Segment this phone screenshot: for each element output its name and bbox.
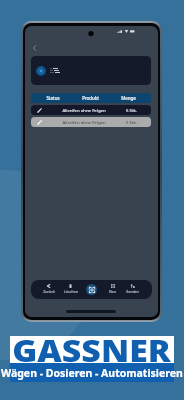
staticText: Menge [121, 95, 136, 101]
staticText: Zurück [43, 289, 55, 294]
staticText: 5 Stk. [126, 119, 137, 125]
staticText: GASSNER [12, 330, 172, 370]
button[interactable]: Altreifen ohne Felgen [31, 105, 151, 115]
staticText: Altreifen ohne Felgen [62, 107, 106, 113]
staticText: Produkt [82, 95, 99, 101]
button[interactable] [31, 56, 151, 85]
staticText: Status [46, 95, 60, 101]
button[interactable]: Delete [60, 284, 81, 294]
staticText: Altreifen ohne Felgen [62, 119, 106, 125]
staticText: Neu [109, 289, 116, 294]
staticText: Senden [126, 289, 139, 294]
staticText: 5 Stk. [126, 107, 137, 113]
staticText: Wägen - Dosieren - Automatisieren [1, 366, 183, 380]
staticText: Löschen [64, 289, 78, 294]
button[interactable]: Altreifen ohne Felgen [31, 117, 151, 127]
button[interactable]: Back [28, 42, 40, 54]
button[interactable]: Send [122, 284, 143, 294]
button[interactable]: Scan [86, 284, 97, 295]
button[interactable]: New [102, 284, 123, 294]
button[interactable]: Back [38, 284, 59, 294]
